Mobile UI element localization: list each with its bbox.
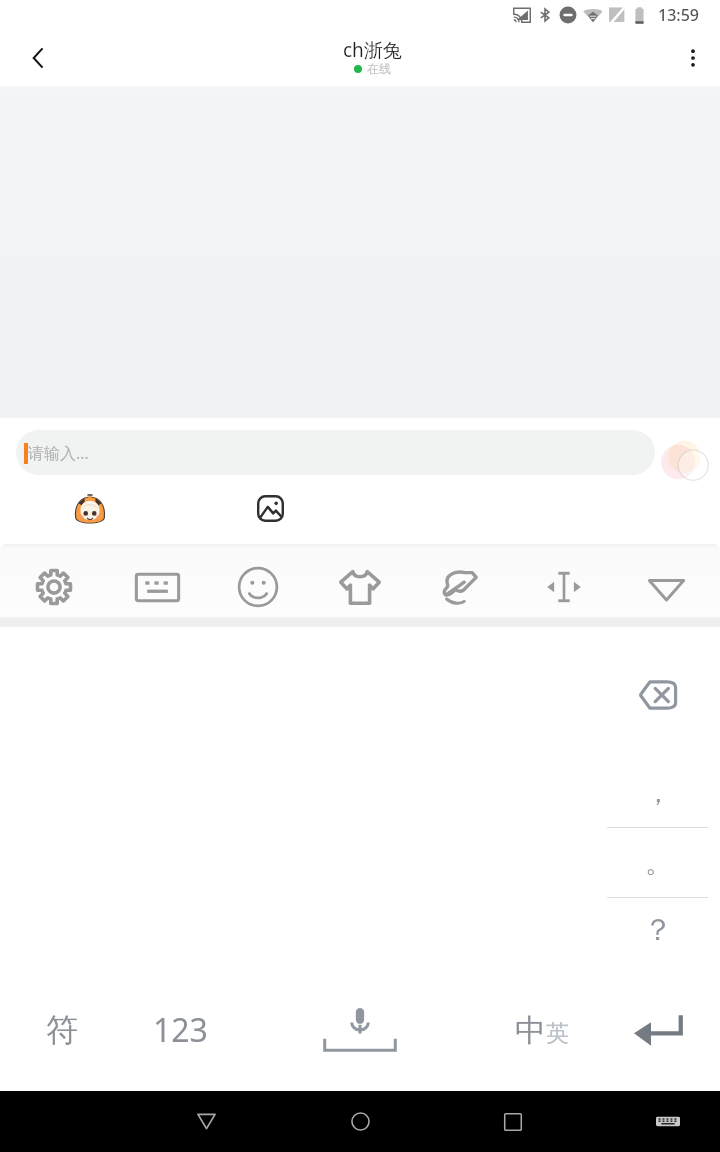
staticText: ch浙兔 [343,37,402,63]
button[interactable]: Hide keyboard [636,550,696,624]
button[interactable]: Voice message [661,436,713,488]
button[interactable]: Space, voice input [275,987,445,1073]
staticText: 123 [153,1008,208,1052]
button[interactable]: Home [332,1091,388,1152]
button[interactable]: Emoji [228,550,288,624]
staticText: 中 [515,1011,546,1050]
staticText: 。 [645,847,671,880]
button[interactable]: Enter [607,987,708,1073]
staticText: 在线 [367,61,391,76]
staticText: 符 [46,1010,78,1050]
button[interactable]: Themes [330,550,390,624]
button[interactable]: 符 [7,987,117,1073]
button[interactable]: Handwriting [431,550,491,624]
button[interactable]: Recents [485,1091,541,1152]
button[interactable]: Send image [250,488,290,528]
button[interactable]: 中 [487,987,597,1073]
button[interactable]: Move cursor [534,550,594,624]
button[interactable]: 。 [607,828,708,898]
button[interactable]: 请输入… [16,430,655,475]
button[interactable]: Stickers [68,488,112,532]
button[interactable]: Keyboard layout [127,550,187,624]
button[interactable]: ？ [607,898,708,962]
button[interactable]: Backspace [607,628,708,758]
button[interactable]: Back [178,1091,234,1152]
staticText: ， [645,777,671,810]
button[interactable]: ， [607,758,708,828]
staticText: 13:59 [658,4,699,26]
button[interactable]: More options [669,34,717,82]
button[interactable]: Settings [24,550,84,624]
button[interactable]: Switch input method [640,1091,696,1152]
button[interactable]: Back [14,34,62,82]
staticText: 请输入… [28,442,89,464]
staticText: 英 [546,1019,569,1048]
staticText: ？ [643,911,673,949]
button[interactable]: 123 [125,987,235,1073]
